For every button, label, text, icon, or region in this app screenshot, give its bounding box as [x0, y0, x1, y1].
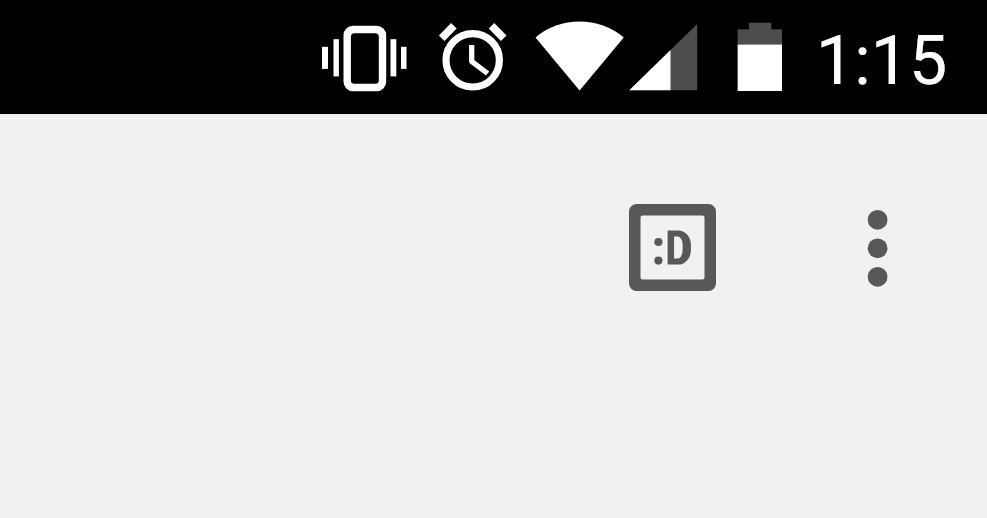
button[interactable]: More options	[845, 188, 910, 308]
button[interactable]: Insert emoticon	[614, 189, 731, 306]
staticText: 1:15	[816, 21, 948, 101]
